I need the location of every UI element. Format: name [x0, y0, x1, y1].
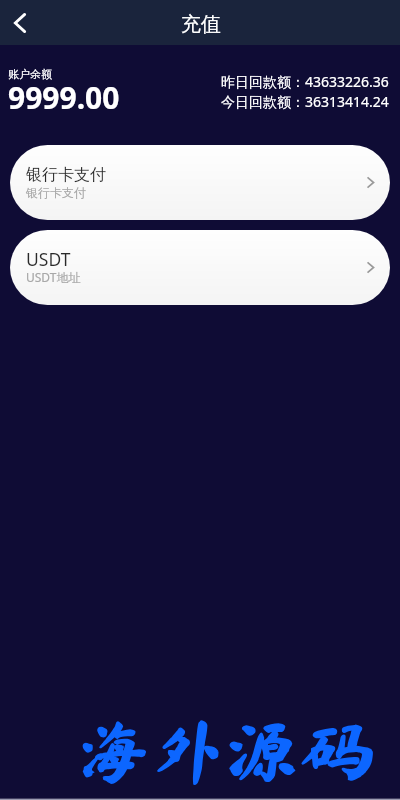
staticText: USDT地址 — [26, 269, 81, 285]
button[interactable]: Back — [0, 0, 44, 44]
staticText: USDT — [26, 247, 71, 271]
staticText: 昨日回款额：43633226.36 — [221, 72, 389, 91]
staticText: 银行卡支付 — [26, 185, 86, 200]
staticText: 账户余额 — [8, 67, 52, 81]
staticText: 9999.00 — [8, 77, 120, 118]
staticText: 银行卡支付 — [26, 165, 106, 185]
staticText: 今日回款额：36313414.24 — [221, 92, 389, 111]
button[interactable]: 银行卡支付 — [10, 145, 390, 220]
staticText: 充值 — [181, 12, 221, 37]
button[interactable]: USDT — [10, 230, 390, 305]
